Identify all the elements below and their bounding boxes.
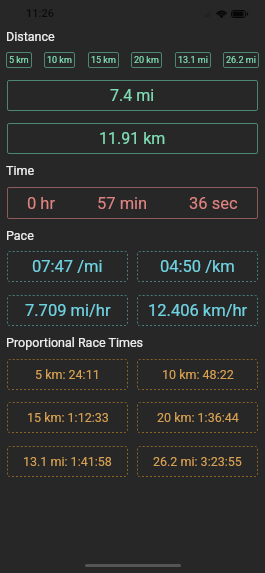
button[interactable]: 10 km: 48:22 [137,359,258,390]
staticText: 10 km [47,55,72,66]
button[interactable]: 15 km [91,52,116,68]
staticText: Proportional Race Times [6,335,143,350]
staticText: 04:50 /km [160,257,235,276]
button[interactable]: 10 km [47,52,72,68]
button[interactable]: 7.4 mi [7,80,258,111]
staticText: 13.1 mi [178,55,208,66]
staticText: 0 hr [27,194,56,213]
button[interactable]: 5 km [9,52,29,68]
staticText: 20 km: 1:36:44 [157,410,239,425]
button[interactable]: 7.709 mi/hr [7,295,128,326]
staticText: 11.91 km [99,129,166,148]
staticText: 26.2 mi: 3:23:55 [153,454,242,469]
button[interactable]: 0 hr [7,187,258,219]
staticText: 7.709 mi/hr [25,301,111,320]
staticText: 15 km [91,55,116,66]
staticText: 20 km [134,55,159,66]
staticText: 15 km: 1:12:33 [27,410,109,425]
staticText: 12.406 km/hr [148,301,248,320]
staticText: Pace [6,228,34,243]
button[interactable]: 20 km: 1:36:44 [137,402,258,433]
staticText: 5 km [9,55,29,66]
button[interactable]: 26.2 mi [226,52,256,68]
staticText: 7.4 mi [110,86,155,105]
staticText: 10 km: 48:22 [162,367,234,382]
button[interactable]: 04:50 /km [137,251,258,282]
staticText: 07:47 /mi [32,257,103,276]
button[interactable]: 12.406 km/hr [137,295,258,326]
staticText: 26.2 mi [226,55,256,66]
staticText: Time [6,163,35,178]
staticText: 11:26 [26,7,54,20]
staticText: Distance [6,29,55,44]
button[interactable]: 15 km: 1:12:33 [7,402,128,433]
button[interactable]: 5 km: 24:11 [7,359,128,390]
button[interactable]: 07:47 /mi [7,251,128,282]
button[interactable]: 11.91 km [7,123,258,154]
button[interactable]: 20 km [134,52,159,68]
button[interactable]: 13.1 mi [178,52,208,68]
button[interactable]: 13.1 mi: 1:41:58 [7,446,128,477]
staticText: 36 sec [189,194,238,213]
button[interactable]: 26.2 mi: 3:23:55 [137,446,258,477]
staticText: 5 km: 24:11 [35,367,100,382]
staticText: 13.1 mi: 1:41:58 [23,454,112,469]
staticText: 57 min [97,194,148,213]
